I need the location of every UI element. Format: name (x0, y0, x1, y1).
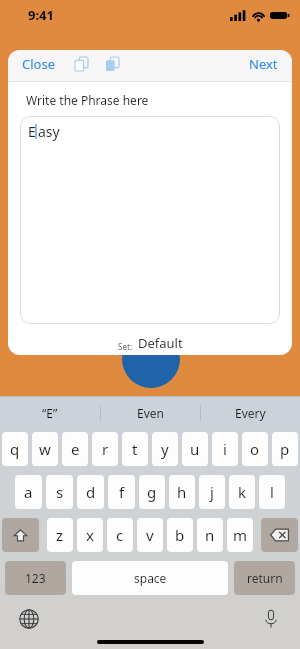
button[interactable]: return (234, 561, 295, 595)
button[interactable]: g (139, 475, 165, 509)
staticText: Close (22, 55, 55, 73)
staticText: e (71, 439, 80, 459)
button[interactable]: y (152, 432, 178, 466)
button[interactable]: l (259, 475, 285, 509)
button[interactable]: z (47, 518, 73, 552)
button[interactable]: i (212, 432, 238, 466)
button[interactable]: Dictate (260, 608, 282, 630)
staticText: r (102, 439, 109, 459)
staticText: E (28, 122, 36, 141)
button[interactable]: e (62, 432, 88, 466)
button[interactable]: Next (247, 50, 280, 78)
button[interactable]: x (77, 518, 103, 552)
button[interactable]: “E” (0, 397, 100, 429)
button[interactable]: p (272, 432, 298, 466)
staticText: Write the Phrase here (26, 92, 149, 108)
staticText: j (210, 482, 214, 502)
staticText: x (86, 525, 94, 545)
staticText: m (233, 525, 248, 545)
button[interactable]: Delete (261, 518, 298, 552)
button[interactable]: v (137, 518, 163, 552)
staticText: d (86, 482, 96, 502)
button[interactable]: d (77, 475, 104, 509)
staticText: l (270, 482, 274, 502)
staticText: n (205, 525, 215, 545)
staticText: b (175, 525, 185, 545)
button[interactable]: s (46, 475, 73, 509)
button[interactable]: t (122, 432, 148, 466)
staticText: i (223, 439, 227, 459)
staticText: h (177, 482, 187, 502)
button[interactable]: Shift (2, 518, 39, 552)
staticText: c (116, 525, 124, 545)
staticText: 123 (25, 570, 46, 586)
button[interactable]: a (15, 475, 42, 509)
button[interactable]: E (20, 116, 280, 324)
button[interactable]: Paste (102, 53, 123, 75)
button[interactable]: space (72, 561, 228, 595)
staticText: “E” (42, 405, 58, 421)
staticText: g (147, 482, 157, 502)
staticText: Every (235, 405, 266, 421)
button[interactable]: o (242, 432, 268, 466)
button[interactable]: Even (101, 397, 200, 429)
button[interactable]: Copy (71, 53, 92, 75)
button[interactable]: r (92, 432, 118, 466)
staticText: t (132, 439, 138, 459)
staticText: 9:41 (28, 6, 54, 24)
button[interactable]: w (32, 432, 58, 466)
staticText: z (56, 525, 64, 545)
staticText: p (280, 439, 290, 459)
staticText: u (190, 439, 200, 459)
button[interactable]: Every (201, 397, 300, 429)
staticText: f (119, 482, 125, 502)
button[interactable]: 123 (5, 561, 66, 595)
staticText: space (134, 570, 167, 586)
button[interactable]: b (167, 518, 193, 552)
staticText: k (238, 482, 247, 502)
staticText: return (247, 570, 283, 586)
staticText: Default (138, 334, 183, 352)
staticText: a (24, 482, 33, 502)
button[interactable]: h (169, 475, 195, 509)
button[interactable]: Change keyboard (18, 608, 40, 630)
button[interactable]: Close (20, 50, 57, 78)
button[interactable]: n (197, 518, 223, 552)
button[interactable]: q (2, 432, 28, 466)
staticText: s (56, 482, 64, 502)
button[interactable]: m (227, 518, 253, 552)
staticText: o (250, 439, 260, 459)
staticText: q (10, 439, 20, 459)
button[interactable]: f (108, 475, 135, 509)
button[interactable]: u (182, 432, 208, 466)
staticText: asy (38, 122, 60, 141)
staticText: Next (249, 55, 278, 73)
button[interactable]: k (229, 475, 255, 509)
staticText: Even (137, 405, 164, 421)
button[interactable]: j (199, 475, 225, 509)
staticText: Set: (118, 341, 133, 352)
staticText: w (39, 439, 51, 459)
staticText: v (146, 525, 154, 545)
button[interactable]: c (107, 518, 133, 552)
staticText: y (161, 439, 169, 459)
